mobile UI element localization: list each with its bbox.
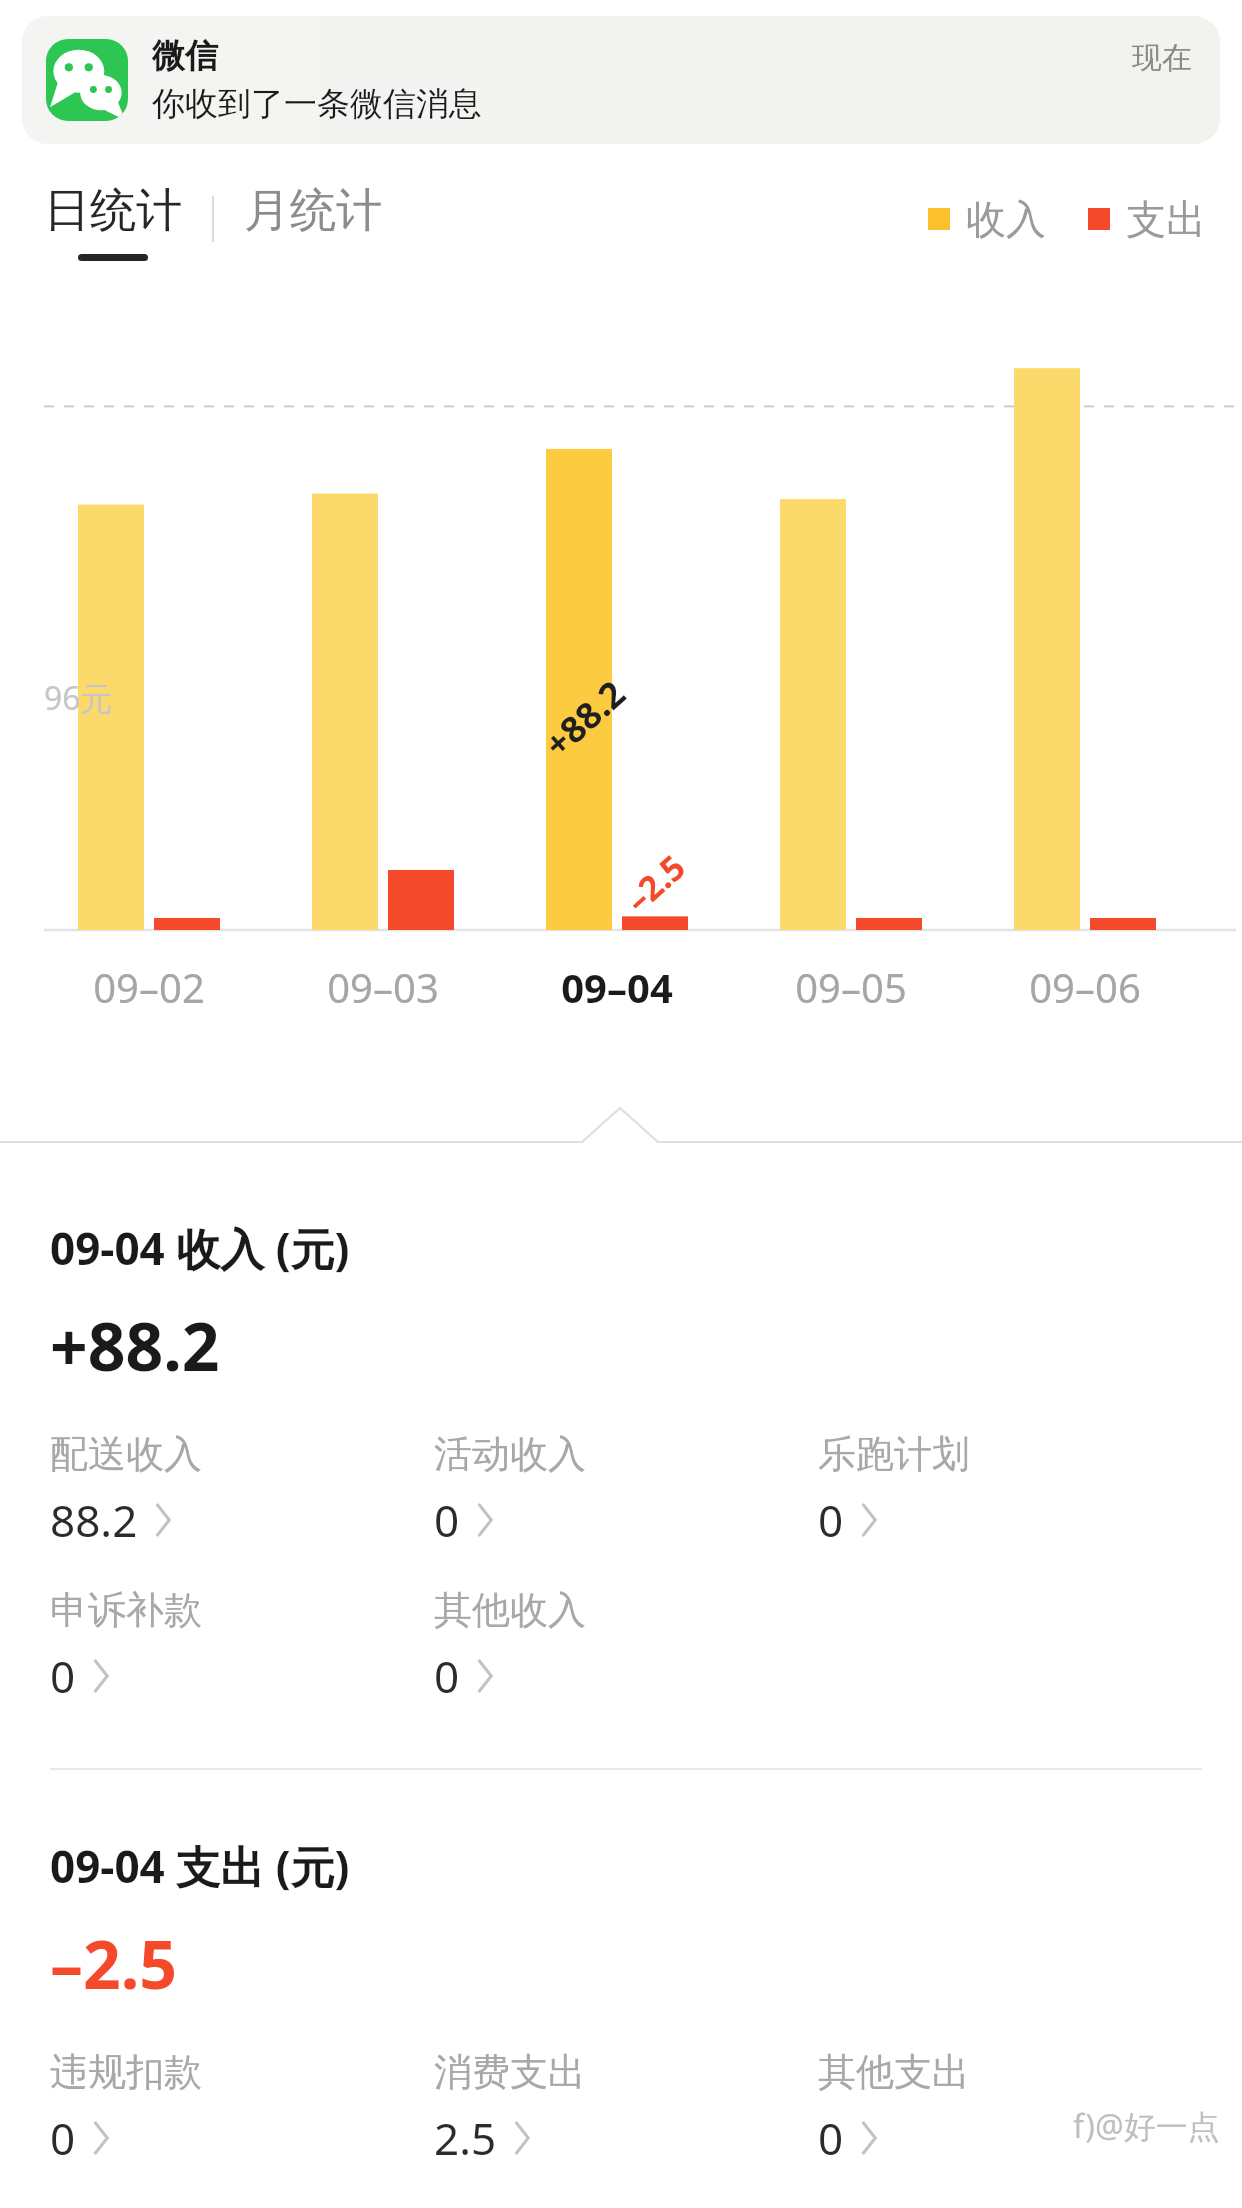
- staticText: –2.5: [615, 844, 695, 922]
- staticText: 96元: [44, 676, 113, 720]
- staticText: 其他支出: [818, 2048, 970, 2096]
- staticText: +88.2: [534, 669, 635, 768]
- button[interactable]: 09–03: [283, 960, 483, 1014]
- staticText: 09–06: [985, 960, 1185, 1014]
- staticText: 0: [434, 1490, 460, 1550]
- staticText: 0: [818, 2108, 844, 2168]
- button[interactable]: 其他收入: [434, 1586, 586, 1706]
- staticText: 申诉补款: [50, 1586, 202, 1634]
- other: WeChat: [46, 39, 128, 121]
- button[interactable]: 日统计: [44, 160, 182, 261]
- staticText: 09–03: [283, 960, 483, 1014]
- staticText: 2.5: [434, 2108, 497, 2168]
- staticText: 0: [818, 1490, 844, 1550]
- button[interactable]: 09–04: [517, 960, 717, 1014]
- staticText: 支出: [1126, 194, 1206, 244]
- staticText: 活动收入: [434, 1430, 586, 1478]
- staticText: 0: [434, 1646, 460, 1706]
- staticText: 收入: [966, 194, 1046, 244]
- staticText: 09–02: [49, 960, 249, 1014]
- staticText: 其他收入: [434, 1586, 586, 1634]
- staticText: 88.2: [50, 1490, 138, 1550]
- button[interactable]: 申诉补款: [50, 1586, 202, 1706]
- staticText: 0: [50, 1646, 76, 1706]
- staticText: 违规扣款: [50, 2048, 202, 2096]
- button[interactable]: 活动收入: [434, 1430, 586, 1550]
- staticText: 0: [50, 2108, 76, 2168]
- staticText: 09-04 收入 (元): [50, 1218, 350, 1278]
- staticText: +88.2: [50, 1300, 220, 1390]
- button[interactable]: 乐跑计划: [818, 1430, 970, 1550]
- staticText: 你收到了一条微信消息: [152, 83, 482, 125]
- button[interactable]: 消费支出: [434, 2048, 586, 2168]
- button[interactable]: WeChat: [22, 16, 1220, 144]
- button[interactable]: 09–05: [751, 960, 951, 1014]
- staticText: 09-04 支出 (元): [50, 1836, 350, 1896]
- button[interactable]: 09–02: [49, 960, 249, 1014]
- staticText: 乐跑计划: [818, 1430, 970, 1478]
- staticText: f)@好一点: [1073, 2104, 1220, 2148]
- button[interactable]: 09–06: [985, 960, 1185, 1014]
- staticText: 09–04: [517, 960, 717, 1014]
- staticText: 微信: [152, 35, 218, 77]
- staticText: 现在: [1132, 39, 1192, 77]
- button[interactable]: 其他支出: [818, 2048, 970, 2168]
- staticText: 09–05: [751, 960, 951, 1014]
- staticText: 消费支出: [434, 2048, 586, 2096]
- staticText: 日统计: [44, 182, 182, 240]
- staticText: –2.5: [50, 1918, 178, 2008]
- button[interactable]: 违规扣款: [50, 2048, 202, 2168]
- button[interactable]: 月统计: [244, 160, 382, 240]
- button[interactable]: 配送收入: [50, 1430, 202, 1550]
- staticText: 配送收入: [50, 1430, 202, 1478]
